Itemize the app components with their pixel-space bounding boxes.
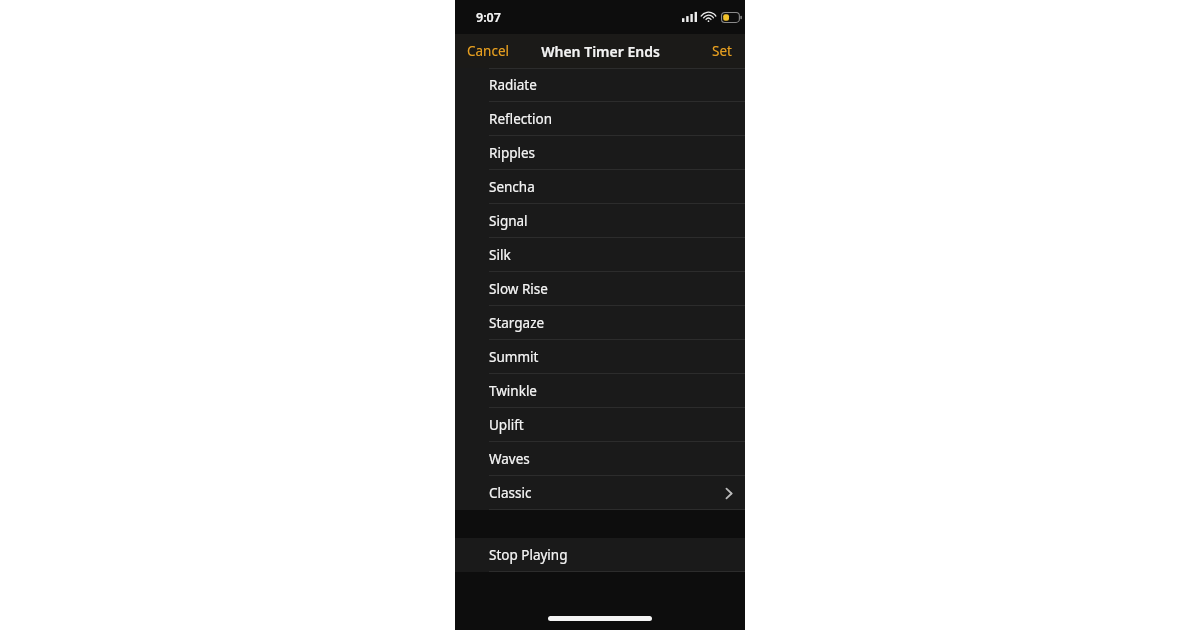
staticText: Ripples <box>489 144 536 162</box>
staticText: Uplift <box>489 416 524 434</box>
button[interactable]: Ripples <box>455 136 745 170</box>
button[interactable]: Signal <box>455 204 745 238</box>
staticText: Reflection <box>489 110 553 128</box>
button[interactable]: Sencha <box>455 170 745 204</box>
button[interactable]: Twinkle <box>455 374 745 408</box>
button[interactable]: Silk <box>455 238 745 272</box>
staticText: Set <box>712 42 732 60</box>
staticText: Slow Rise <box>489 280 548 298</box>
staticText: When Timer Ends <box>541 42 660 61</box>
button[interactable]: Stargaze <box>455 306 745 340</box>
staticText: 9:07 <box>476 9 501 26</box>
staticText: Radiate <box>489 76 537 94</box>
staticText: Summit <box>489 348 539 366</box>
staticText: Waves <box>489 450 530 468</box>
staticText: Silk <box>489 246 511 264</box>
staticText: Stop Playing <box>489 546 568 564</box>
button[interactable]: Cancel <box>455 34 520 68</box>
staticText: Sencha <box>489 178 535 196</box>
staticText: Cancel <box>467 42 510 60</box>
button[interactable]: Waves <box>455 442 745 476</box>
button[interactable]: Uplift <box>455 408 745 442</box>
button[interactable]: Slow Rise <box>455 272 745 306</box>
staticText: Classic <box>489 484 532 502</box>
other: More Classic tones <box>725 487 733 500</box>
staticText: Signal <box>489 212 528 230</box>
button[interactable]: Classic <box>455 476 745 510</box>
button[interactable]: Set <box>702 34 745 68</box>
staticText: Twinkle <box>489 382 537 400</box>
button[interactable]: Stop Playing <box>455 538 745 572</box>
button[interactable]: Summit <box>455 340 745 374</box>
button[interactable]: Reflection <box>455 102 745 136</box>
staticText: Stargaze <box>489 314 545 332</box>
